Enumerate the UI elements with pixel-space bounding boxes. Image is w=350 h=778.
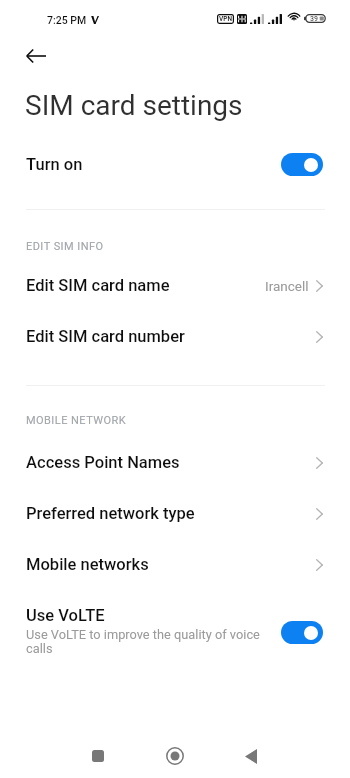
staticText: MOBILE NETWORK — [26, 414, 127, 427]
staticText: Preferred network type — [26, 504, 195, 523]
button[interactable]: Toggle — [281, 621, 323, 644]
staticText: SIM card settings — [25, 89, 243, 122]
staticText: Access Point Names — [26, 453, 180, 472]
button[interactable]: Access Point Names — [0, 437, 350, 488]
staticText: Use VoLTE to improve the quality of voic… — [26, 627, 264, 656]
button[interactable]: Recent apps — [76, 734, 120, 778]
button[interactable]: Edit SIM card name — [0, 260, 350, 311]
staticText: Mobile networks — [26, 555, 149, 574]
staticText: Edit SIM card number — [26, 327, 185, 346]
staticText: VPN — [219, 15, 233, 23]
button[interactable]: Use VoLTE — [0, 601, 350, 661]
button[interactable]: Mobile networks — [0, 539, 350, 590]
button[interactable]: Edit SIM card number — [0, 311, 350, 362]
staticText: Turn on — [26, 155, 83, 174]
staticText: EDIT SIM INFO — [26, 240, 104, 253]
button[interactable]: Back — [18, 38, 54, 74]
button[interactable]: Preferred network type — [0, 488, 350, 539]
button[interactable]: Back — [229, 734, 273, 778]
staticText: 7:25 PM — [47, 14, 87, 26]
button[interactable]: Toggle — [281, 153, 323, 176]
staticText: 39 — [310, 15, 318, 23]
button[interactable]: Home — [153, 734, 197, 778]
button[interactable]: Turn on — [0, 141, 350, 188]
staticText: Edit SIM card name — [26, 276, 170, 295]
staticText: Use VoLTE — [26, 606, 105, 625]
staticText: Irancell — [265, 278, 309, 294]
